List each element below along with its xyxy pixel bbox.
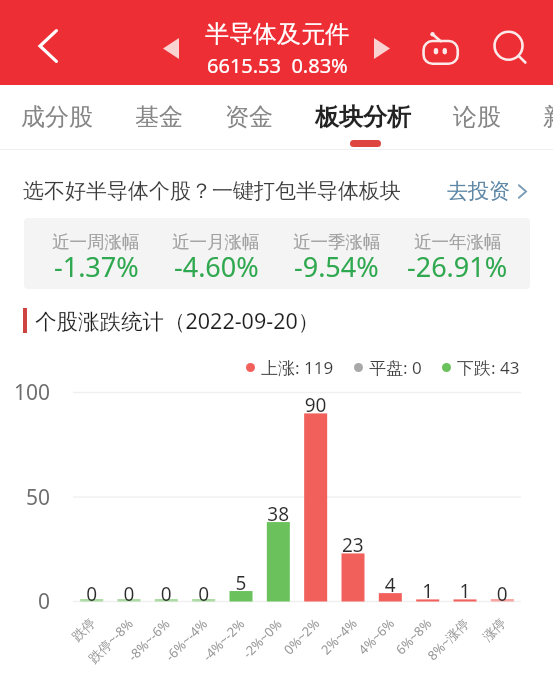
staticText: 近一年涨幅 [414, 231, 502, 253]
staticText: 上涨: 119 [261, 356, 334, 379]
staticText: 资金 [225, 102, 273, 132]
staticText: 近一季涨幅 [293, 231, 381, 253]
button[interactable]: 去投资 [447, 178, 527, 204]
staticText: 去投资 [447, 178, 510, 204]
button[interactable]: AI assistant [416, 23, 466, 73]
button[interactable]: 资金 [204, 85, 294, 150]
staticText: -9.54% [294, 248, 379, 285]
staticText: 6615.53 0.83% [207, 52, 348, 79]
staticText: -1.37% [54, 248, 139, 285]
staticText: 基金 [135, 102, 183, 132]
button[interactable]: 板块分析 [294, 85, 432, 150]
button[interactable]: 新 [522, 85, 553, 150]
staticText: 成分股 [21, 102, 93, 132]
staticText: 近一月涨幅 [172, 231, 260, 253]
button[interactable]: Next sector [366, 33, 398, 63]
button[interactable]: Back [25, 20, 71, 66]
staticText: 下跌: 43 [457, 356, 520, 379]
staticText: -4.60% [174, 248, 259, 285]
staticText: 半导体及元件 [205, 19, 349, 49]
button[interactable]: 论股 [432, 85, 522, 150]
staticText: 板块分析 [315, 102, 411, 132]
staticText: -26.91% [407, 248, 508, 285]
staticText: 论股 [453, 102, 501, 132]
button[interactable]: Search [486, 23, 536, 73]
staticText: 近一周涨幅 [52, 231, 140, 253]
button[interactable]: Previous sector [155, 33, 187, 63]
staticText: 选不好半导体个股？一键打包半导体板块 [23, 178, 401, 204]
button[interactable]: 成分股 [0, 85, 114, 150]
staticText: 个股涨跌统计（2022-09-20） [35, 306, 320, 335]
staticText: 平盘: 0 [369, 356, 422, 379]
button[interactable]: 基金 [114, 85, 204, 150]
